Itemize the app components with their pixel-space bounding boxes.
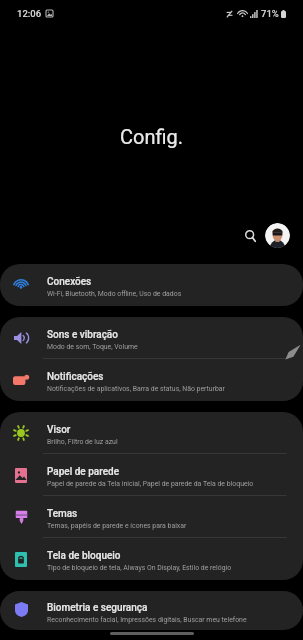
staticText: Sons e vibração [47, 329, 118, 341]
staticText: 12:06 [17, 8, 42, 19]
staticText: Tela de bloqueio [47, 550, 121, 562]
button[interactable]: Temas [0, 496, 303, 538]
staticText: Tipo de bloqueio de tela, Always On Disp… [47, 564, 232, 572]
staticText: Modo de som, Toque, Volume [47, 343, 138, 351]
staticText: Temas [47, 508, 78, 520]
staticText: Papel de parede da Tela inicial, Papel d… [47, 480, 254, 488]
staticText: Papel de parede [47, 466, 120, 478]
button[interactable]: Conexões [0, 264, 303, 306]
button[interactable]: Visor [0, 412, 303, 454]
staticText: Conexões [47, 276, 92, 288]
button[interactable]: Sons e vibração [0, 317, 303, 359]
button[interactable]: Biometria e segurança [0, 591, 303, 630]
staticText: Biometria e segurança [47, 602, 148, 614]
button[interactable]: Search [236, 221, 265, 250]
staticText: Temas, papéis de parede e ícones para ba… [47, 522, 187, 530]
staticText: Notificações de aplicativos, Barra de st… [47, 385, 225, 393]
staticText: Notificações [47, 371, 104, 383]
button[interactable]: Tela de bloqueio [0, 538, 303, 580]
staticText: Config. [120, 125, 184, 148]
staticText: 71% [261, 8, 279, 19]
button[interactable]: Papel de parede [0, 454, 303, 496]
staticText: Reconhecimento facial, Impressões digita… [47, 616, 247, 624]
staticText: Wi-Fi, Bluetooth, Modo offline, Uso de d… [47, 290, 182, 298]
staticText: Visor [47, 424, 71, 436]
button[interactable]: Profile [265, 223, 290, 248]
button[interactable]: Notificações [0, 359, 303, 401]
staticText: Brilho, Filtro de luz azul [47, 438, 118, 446]
